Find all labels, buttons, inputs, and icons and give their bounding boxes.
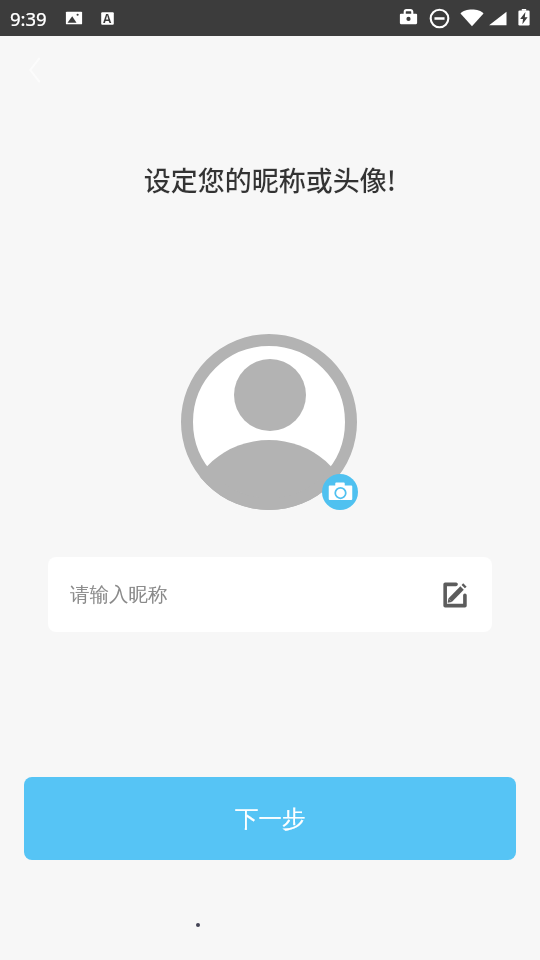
button[interactable]: 下一步 [24, 777, 516, 860]
button[interactable]: Change avatar [181, 334, 357, 510]
staticText: 请输入昵称 [70, 582, 168, 607]
button[interactable]: Edit nickname [437, 578, 471, 612]
staticText: 下一步 [235, 804, 306, 834]
staticText: 设定您的昵称或头像! [0, 160, 540, 199]
staticText: A [103, 10, 112, 26]
button[interactable]: Take photo [322, 474, 358, 510]
button[interactable]: 请输入昵称 [48, 557, 492, 632]
staticText: 9:39 [10, 6, 47, 31]
